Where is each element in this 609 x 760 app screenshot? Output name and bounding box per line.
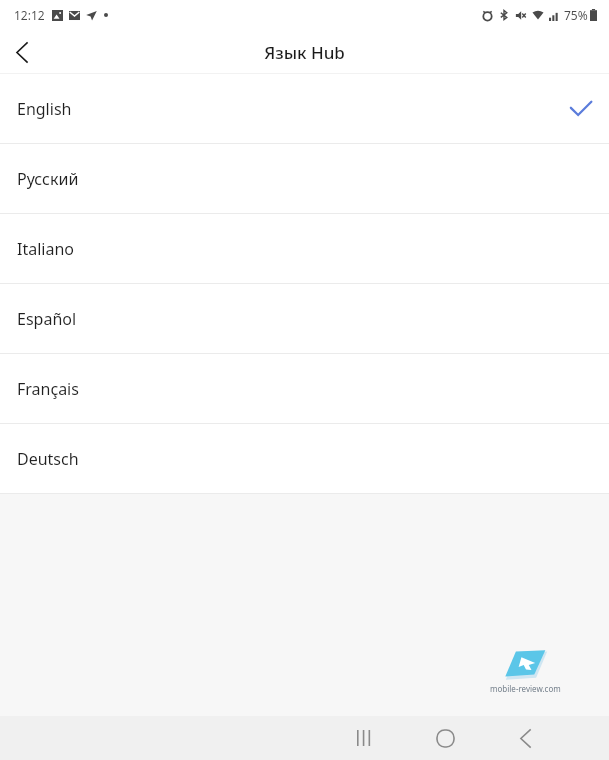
staticText: Язык Hub <box>264 41 345 64</box>
button[interactable]: Italiano <box>0 214 609 283</box>
button[interactable]: Back <box>0 30 44 74</box>
button[interactable]: Home <box>421 716 469 760</box>
button[interactable]: Español <box>0 284 609 353</box>
button[interactable]: English <box>0 74 609 143</box>
staticText: 12:12 <box>14 7 45 23</box>
staticText: Français <box>17 378 79 400</box>
staticText: mobile-review.com <box>490 683 561 694</box>
staticText: Deutsch <box>17 448 79 470</box>
button[interactable]: Back <box>501 716 549 760</box>
button[interactable]: Français <box>0 354 609 423</box>
staticText: Italiano <box>17 238 74 260</box>
staticText: Español <box>17 308 77 330</box>
button[interactable]: Deutsch <box>0 424 609 493</box>
staticText: Русский <box>17 168 79 190</box>
button[interactable]: Русский <box>0 144 609 213</box>
staticText: 75% <box>564 7 588 23</box>
button[interactable]: Recent apps <box>340 716 388 760</box>
staticText: English <box>17 98 72 120</box>
